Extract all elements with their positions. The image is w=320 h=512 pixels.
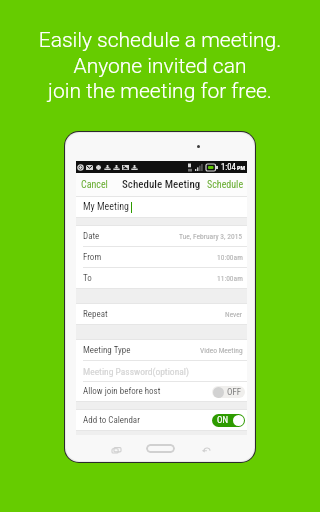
staticText: Date [83, 231, 100, 242]
staticText: 1:04 [221, 162, 236, 172]
staticText: OFF [227, 387, 242, 398]
staticText: Schedule Meeting [122, 178, 201, 191]
button[interactable]: Repeat [76, 304, 247, 324]
button[interactable]: Home [146, 444, 175, 453]
staticText: Add to Calendar [83, 415, 140, 426]
staticText: Never [225, 310, 243, 319]
button[interactable]: Date [76, 226, 247, 246]
button[interactable]: Schedule [200, 174, 247, 196]
staticText: Meeting Password(optional) [83, 366, 189, 377]
staticText: My Meeting [83, 201, 129, 213]
button[interactable]: Back [198, 442, 214, 458]
button[interactable]: Meeting Type [76, 340, 247, 360]
staticText: Cancel [81, 179, 108, 191]
button[interactable]: Add to Calendar [76, 410, 247, 430]
button[interactable]: My Meeting [76, 197, 247, 217]
staticText: PM [237, 164, 245, 171]
button[interactable]: Meeting Password(optional) [76, 361, 247, 381]
staticText: ON [217, 415, 228, 426]
staticText: Allow join before host [83, 386, 161, 397]
staticText: Video Meeting [200, 346, 243, 355]
staticText: Meeting Type [83, 345, 131, 356]
button[interactable]: Cancel [76, 174, 115, 196]
staticText: Tue, February 3, 2015 [179, 232, 243, 241]
staticText: From [83, 252, 102, 263]
button[interactable]: Toggle on [212, 414, 245, 427]
button[interactable]: Allow join before host [76, 382, 247, 401]
staticText: 10:00am [217, 253, 243, 262]
staticText: 11:00am [217, 274, 243, 283]
button[interactable]: Toggle off [212, 386, 245, 398]
button[interactable]: Recents [108, 442, 124, 458]
button[interactable]: To [76, 268, 247, 288]
staticText: Easily schedule a meeting. Anyone invite… [0, 28, 320, 103]
staticText: Schedule [207, 179, 244, 191]
staticText: To [83, 273, 92, 284]
button[interactable]: From [76, 247, 247, 267]
staticText: Repeat [83, 309, 108, 320]
